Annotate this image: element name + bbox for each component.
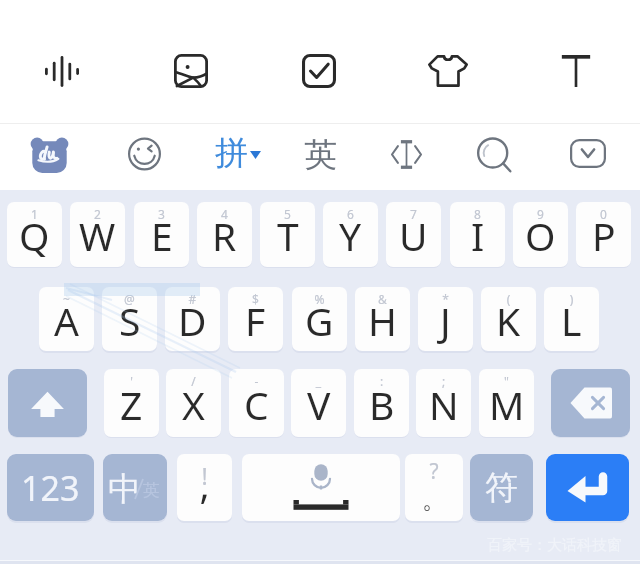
staticText: ! [177,460,232,491]
staticText: : [354,373,409,389]
staticText: R [212,209,237,262]
button[interactable]: Checklist [284,36,354,106]
button[interactable]: 9 [513,202,568,267]
button[interactable]: & [355,287,410,351]
staticText: ? [405,457,463,486]
button[interactable]: 拼 [201,122,275,184]
staticText: N [429,378,459,431]
staticText: C [244,378,269,431]
staticText: ( [481,291,536,307]
staticText: X [182,378,205,431]
staticText: M [489,378,525,431]
button[interactable]: Skin [410,37,486,105]
staticText: E [151,209,173,262]
button[interactable]: 符 [470,454,533,521]
staticText: 。 [405,485,463,515]
staticText: , [177,458,232,510]
staticText: J [440,294,451,347]
button[interactable]: ! [177,454,232,521]
button[interactable]: ? [405,454,463,521]
staticText: B [369,378,395,431]
staticText: 8 [450,206,505,222]
button[interactable]: ' [104,369,159,437]
button[interactable]: ~ [39,287,94,351]
button[interactable]: 6 [323,202,378,267]
button[interactable]: Enter [546,454,629,521]
button[interactable]: Space [242,454,400,521]
staticText: ) [544,291,599,307]
staticText: 4 [197,206,252,222]
button[interactable]: Emoji [110,119,179,189]
staticText: A [54,294,79,347]
staticText: 1 [7,206,62,222]
staticText: Z [120,378,143,431]
staticText: Y [339,209,362,262]
staticText: 3 [134,206,189,222]
staticText: * [418,291,473,307]
button[interactable]: 5 [260,202,315,267]
button[interactable]: 中 [103,454,167,521]
button[interactable]: Hide keyboard [552,121,624,186]
button[interactable]: % [292,287,347,351]
staticText: I [471,209,485,262]
button[interactable]: / [166,369,221,437]
button[interactable]: # [165,287,220,351]
staticText: @ [102,291,157,307]
button[interactable]: Text size [542,37,610,105]
button[interactable]: Voice input [27,38,97,105]
staticText: 符 [485,467,518,509]
button[interactable]: Backspace [551,369,630,437]
staticText: U [399,209,428,262]
button[interactable]: @ [102,287,157,351]
staticText: 123 [21,465,80,511]
button[interactable]: : [354,369,409,437]
button[interactable]: Baidu [13,118,86,191]
staticText: 百家号：大话科技窗 [487,536,622,555]
staticText: 中 [108,468,141,510]
button[interactable]: ( [481,287,536,351]
button[interactable]: ) [544,287,599,351]
button[interactable]: 4 [197,202,252,267]
staticText: T [277,209,299,262]
staticText: W [79,209,116,262]
button[interactable]: 7 [386,202,441,267]
staticText: V [307,378,331,431]
staticText: H [368,294,397,347]
button[interactable]: 1 [7,202,62,267]
staticText: 0 [576,206,631,222]
button[interactable]: _ [291,369,346,437]
button[interactable]: 英 [290,124,350,186]
staticText: _ [291,373,346,389]
staticText: 2 [70,206,125,222]
staticText: / [166,373,221,389]
button[interactable]: $ [228,287,283,351]
staticText: 英 [304,134,337,176]
button[interactable]: - [229,369,284,437]
button[interactable]: Cursor control [372,122,441,187]
button[interactable]: " [479,369,534,437]
button[interactable]: ; [416,369,471,437]
staticText: 6 [323,206,378,222]
staticText: S [119,294,141,347]
staticText: & [355,291,410,307]
button[interactable]: 123 [7,454,94,521]
staticText: 英 [143,480,160,501]
button[interactable]: 2 [70,202,125,267]
staticText: ~ [39,291,94,307]
staticText: F [245,294,266,347]
button[interactable]: Shift [8,369,87,437]
staticText: 7 [386,206,441,222]
staticText: # [165,291,220,307]
button[interactable]: 0 [576,202,631,267]
staticText: Q [19,209,50,262]
button[interactable]: 8 [450,202,505,267]
staticText: " [479,373,534,389]
button[interactable]: Search [460,120,529,190]
staticText: - [229,373,284,389]
button[interactable]: Pictures [156,36,226,106]
button[interactable]: 3 [134,202,189,267]
staticText: % [292,291,347,307]
button[interactable]: * [418,287,473,351]
staticText: 9 [513,206,568,222]
staticText: ; [416,373,471,389]
